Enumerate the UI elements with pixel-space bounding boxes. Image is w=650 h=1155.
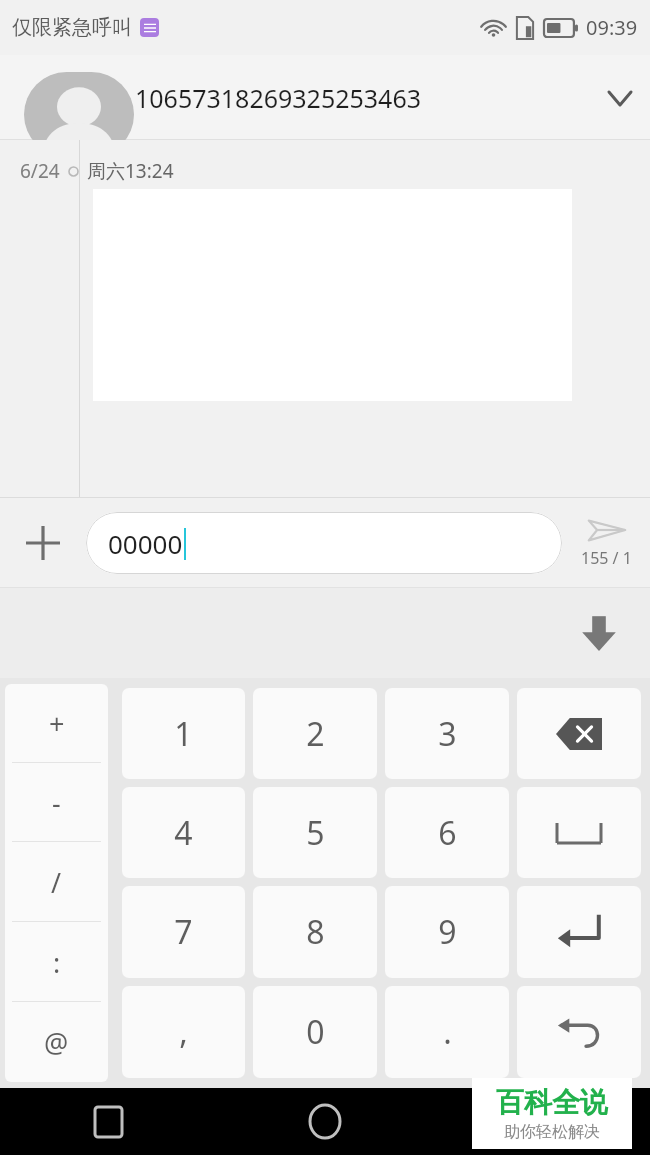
button[interactable]: Contact avatar <box>24 72 134 157</box>
staticText: 6/24 <box>20 158 60 184</box>
button[interactable]: Home <box>216 1088 433 1155</box>
button[interactable]: Delete <box>517 688 641 779</box>
button[interactable]: Enter <box>517 886 641 978</box>
button[interactable]: 9 <box>385 886 509 978</box>
button[interactable]: - <box>5 763 108 842</box>
button[interactable]: Send <box>562 498 650 588</box>
button[interactable]: @ <box>5 1002 108 1082</box>
staticText: 09:39 <box>586 14 638 41</box>
staticText: 3 <box>438 712 457 756</box>
staticText: 百科全说 <box>496 1085 608 1120</box>
staticText: 9 <box>438 910 457 954</box>
button[interactable]: 8 <box>253 886 377 978</box>
staticText: : <box>53 944 61 981</box>
button[interactable]: 5 <box>253 787 377 878</box>
button[interactable]: 3 <box>385 688 509 779</box>
button[interactable]: Hide keyboard <box>570 604 628 662</box>
staticText: 0 <box>306 1010 325 1054</box>
staticText: 6 <box>438 811 457 855</box>
button[interactable]: 4 <box>122 787 245 878</box>
staticText: 1 <box>174 712 193 756</box>
button[interactable]: 10657318269325253463 <box>0 55 650 140</box>
button[interactable]: Undo <box>517 986 641 1078</box>
staticText: @ <box>44 1024 69 1061</box>
staticText: , <box>179 1010 188 1054</box>
staticText: 2 <box>306 712 325 756</box>
button[interactable]: . <box>385 986 509 1078</box>
staticText: - <box>52 784 61 821</box>
staticText: 仅限紧急呼叫 <box>12 15 132 40</box>
button[interactable]: , <box>122 986 245 1078</box>
button[interactable]: 7 <box>122 886 245 978</box>
staticText: 助你轻松解决 <box>504 1122 600 1142</box>
button[interactable]: : <box>5 922 108 1002</box>
staticText: . <box>443 1010 452 1054</box>
staticText: 8 <box>306 910 325 954</box>
staticText: / <box>51 864 62 901</box>
button[interactable]: Expand <box>590 68 650 128</box>
button[interactable]: + <box>5 684 108 763</box>
staticText: 10657318269325253463 <box>135 81 590 115</box>
button[interactable]: Recent apps <box>0 1088 216 1155</box>
button[interactable]: / <box>5 842 108 922</box>
staticText: + <box>49 705 65 742</box>
staticText: 5 <box>306 811 325 855</box>
button[interactable]: 0 <box>253 986 377 1078</box>
staticText: 155 / 1 <box>581 547 632 569</box>
staticText: 7 <box>174 910 193 954</box>
button[interactable]: 1 <box>122 688 245 779</box>
staticText: 周六13:24 <box>87 158 174 184</box>
button[interactable]: Add attachment <box>0 500 86 586</box>
staticText: 00000 <box>108 526 183 561</box>
button[interactable]: 00000 <box>86 512 562 574</box>
button[interactable]: Back <box>433 1088 650 1155</box>
staticText: 4 <box>174 811 193 855</box>
button[interactable]: 2 <box>253 688 377 779</box>
button[interactable]: 6 <box>385 787 509 878</box>
button[interactable]: Space <box>517 787 641 878</box>
